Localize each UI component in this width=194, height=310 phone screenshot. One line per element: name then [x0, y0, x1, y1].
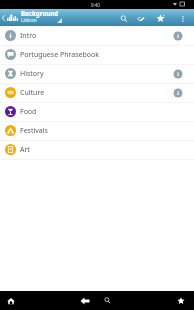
staticText: History [20, 69, 44, 79]
button[interactable]: Portuguese Phrasebook [0, 45, 194, 64]
staticText: Food [20, 107, 37, 117]
button[interactable]: Home [3, 291, 19, 310]
staticText: Lisbon [21, 17, 37, 24]
button[interactable]: Search [114, 10, 133, 27]
button[interactable]: History [0, 64, 194, 83]
button[interactable]: Edit [131, 10, 150, 27]
staticText: Portuguese Phrasebook [20, 50, 99, 60]
button[interactable]: Food [0, 102, 194, 121]
button[interactable]: Intro [0, 26, 194, 45]
staticText: Background [21, 9, 59, 17]
button[interactable]: Culture [0, 83, 194, 102]
button[interactable]: Back [77, 291, 93, 310]
button[interactable]: Search [99, 291, 115, 310]
staticText: Culture [20, 88, 45, 98]
button[interactable]: Festivals [0, 121, 194, 140]
staticText: Intro [20, 31, 37, 41]
button[interactable]: Up [0, 14, 19, 21]
button[interactable]: Favorite [151, 10, 170, 27]
staticText: Art [20, 145, 30, 155]
button[interactable]: Art [0, 140, 194, 159]
staticText: 9:40 [91, 2, 100, 8]
button[interactable]: More options [173, 10, 193, 27]
button[interactable]: Favorites [173, 291, 189, 310]
staticText: Festivals [20, 126, 48, 136]
